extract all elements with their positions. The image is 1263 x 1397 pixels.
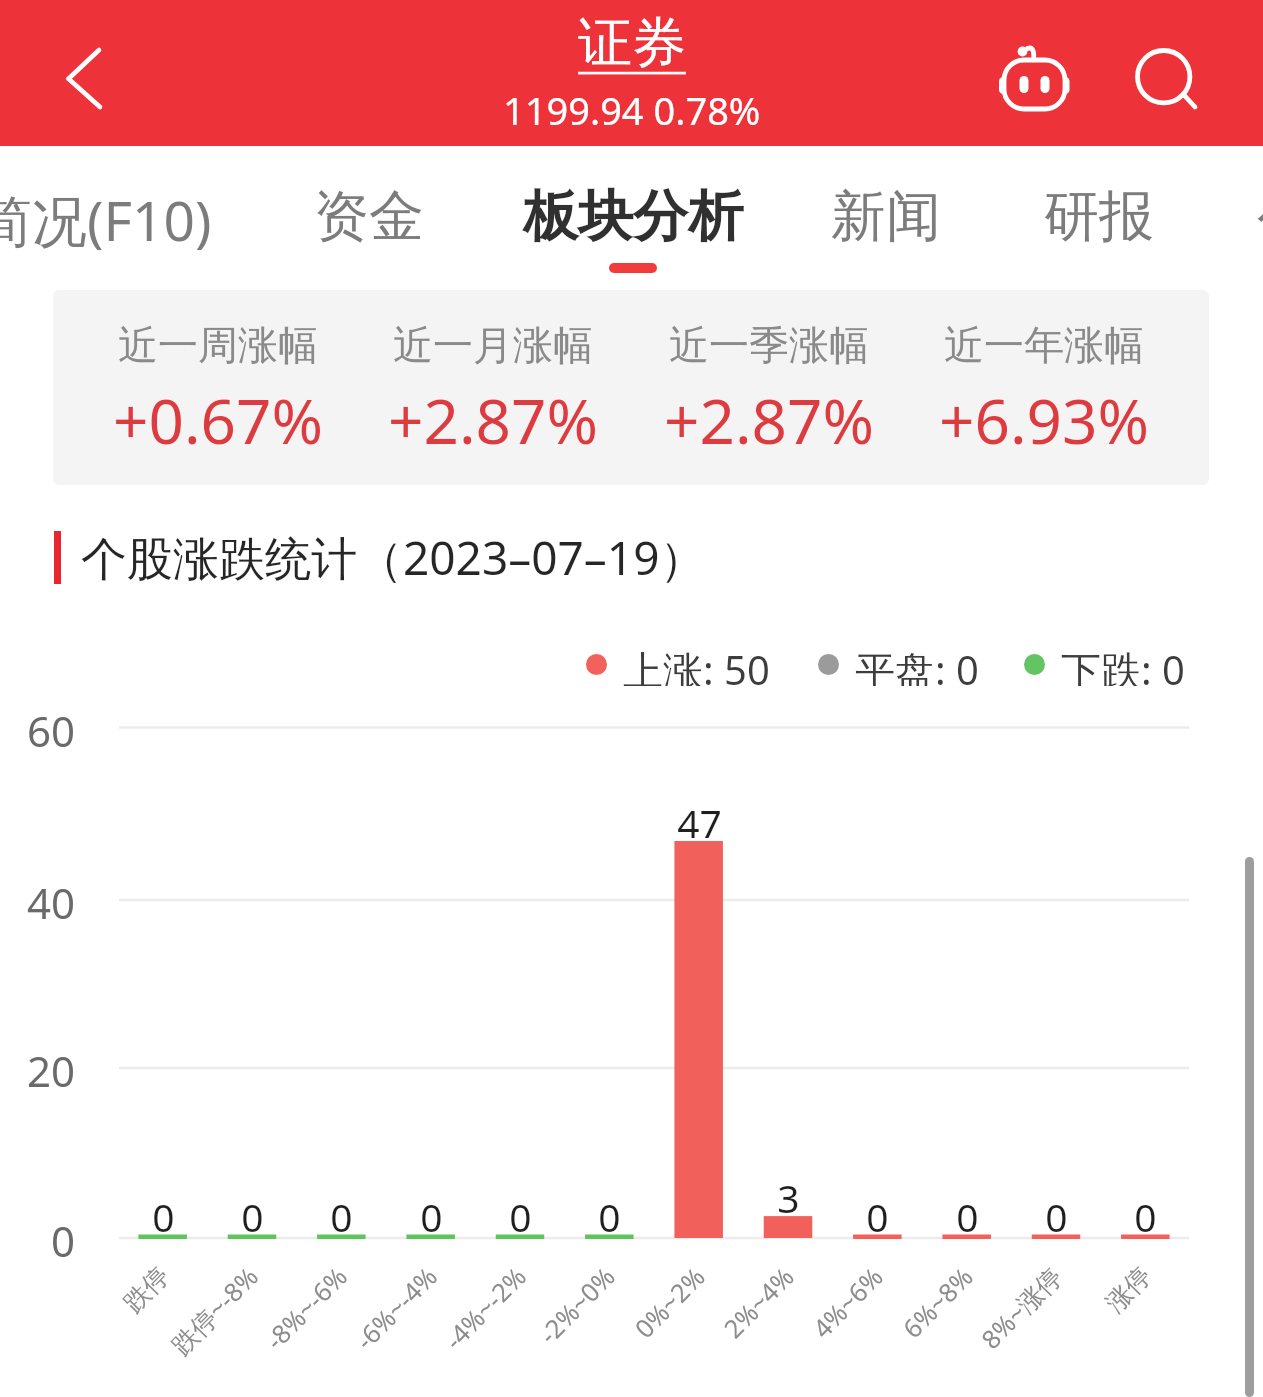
button[interactable]: 公告 [1257, 170, 1263, 273]
staticText: -4%~-2% [437, 1259, 534, 1357]
button[interactable]: 近一季涨幅 [629, 320, 909, 462]
staticText: 跌停 [117, 1260, 175, 1319]
button[interactable]: 新闻 [831, 170, 941, 273]
button[interactable]: 近一周涨幅 [78, 320, 358, 462]
staticText: 研报 [1044, 182, 1154, 251]
staticText: 8%~涨停 [973, 1259, 1070, 1356]
staticText: 资金 [314, 182, 424, 251]
staticText: 60 [27, 702, 76, 759]
staticText: 0 [51, 1212, 76, 1269]
staticText: 近一周涨幅 [118, 320, 318, 370]
button[interactable]: 近一年涨幅 [904, 320, 1184, 462]
staticText: 0 [509, 1190, 532, 1243]
staticText: -8%~-6% [258, 1259, 355, 1357]
staticText: 平盘: 0 [855, 642, 979, 686]
button[interactable]: AI assistant [984, 18, 1086, 120]
staticText: +2.87% [664, 378, 874, 462]
staticText: 0 [1134, 1190, 1157, 1243]
button[interactable]: Back [14, 6, 134, 126]
button[interactable]: 简况(F10) [0, 170, 212, 279]
staticText: 47 [677, 796, 722, 849]
staticText: +0.67% [113, 378, 323, 462]
staticText: +6.93% [939, 378, 1149, 462]
staticText: 40 [27, 874, 76, 931]
staticText: 证券 [578, 9, 686, 77]
staticText: 1199.94 0.78% [503, 84, 761, 136]
staticText: 近一年涨幅 [944, 320, 1144, 370]
staticText: 近一季涨幅 [669, 320, 869, 370]
staticText: 新闻 [831, 182, 941, 251]
staticText: 0 [420, 1190, 443, 1243]
staticText: 0 [241, 1190, 264, 1243]
staticText: 0 [866, 1190, 889, 1243]
staticText: 0 [956, 1190, 979, 1243]
button[interactable]: 资金 [314, 170, 424, 273]
staticText: 个股涨跌统计（2023–07–19） [81, 526, 706, 589]
staticText: 下跌: 0 [1061, 642, 1185, 686]
staticText: 0 [152, 1190, 175, 1243]
staticText: 2%~4% [716, 1259, 802, 1346]
button[interactable]: 近一月涨幅 [353, 320, 633, 462]
staticText: 上涨: 50 [623, 642, 770, 686]
staticText: -2%~0% [531, 1259, 623, 1351]
staticText: 跌停~-8% [164, 1259, 266, 1362]
staticText: 0 [1045, 1190, 1068, 1243]
staticText: 近一月涨幅 [393, 320, 593, 370]
staticText: 简况(F10) [0, 182, 212, 257]
staticText: +2.87% [388, 378, 598, 462]
staticText: 3 [777, 1171, 800, 1224]
staticText: 20 [27, 1042, 76, 1099]
staticText: 4%~6% [805, 1259, 891, 1346]
staticText: 公告 [1257, 182, 1263, 251]
staticText: 0 [598, 1190, 621, 1243]
staticText: -6%~-4% [348, 1259, 445, 1357]
staticText: 0%~2% [627, 1259, 713, 1346]
staticText: 0 [330, 1190, 353, 1243]
staticText: 涨停 [1099, 1260, 1157, 1319]
button[interactable]: 研报 [1044, 170, 1154, 273]
button[interactable]: Search [1120, 20, 1220, 120]
staticText: 板块分析 [523, 182, 743, 251]
button[interactable]: 板块分析 [523, 170, 743, 283]
staticText: 6%~8% [895, 1259, 981, 1346]
